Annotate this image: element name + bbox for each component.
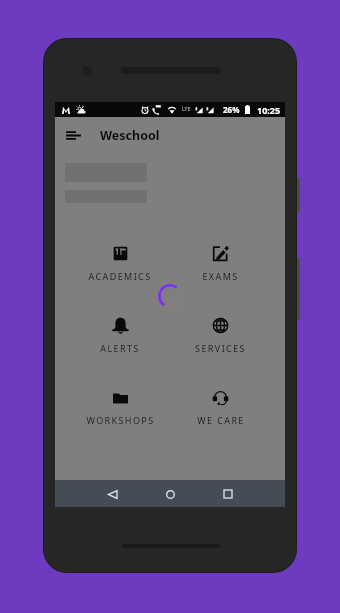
staticText: LTE	[182, 106, 191, 113]
staticText: 10:25	[257, 104, 281, 116]
button[interactable]: ALERTS	[70, 317, 170, 354]
staticText: 26%	[223, 104, 240, 115]
button[interactable]: Menu	[62, 124, 84, 146]
staticText: SERVICES	[195, 342, 246, 354]
button[interactable]: Back	[103, 485, 121, 503]
button[interactable]: ACADEMICS	[70, 245, 170, 282]
button[interactable]: SERVICES	[170, 317, 271, 354]
staticText: ALERTS	[100, 342, 140, 354]
button[interactable]: Recents	[219, 485, 237, 503]
button[interactable]: WORKSHOPS	[70, 389, 170, 426]
staticText: Weschool	[100, 127, 160, 144]
button[interactable]: WE CARE	[170, 389, 271, 426]
button[interactable]: Home	[161, 485, 179, 503]
button[interactable]: EXAMS	[170, 245, 271, 282]
staticText: WE CARE	[197, 414, 245, 426]
staticText: WORKSHOPS	[86, 414, 155, 426]
staticText: ACADEMICS	[88, 270, 152, 282]
staticText: EXAMS	[202, 270, 239, 282]
